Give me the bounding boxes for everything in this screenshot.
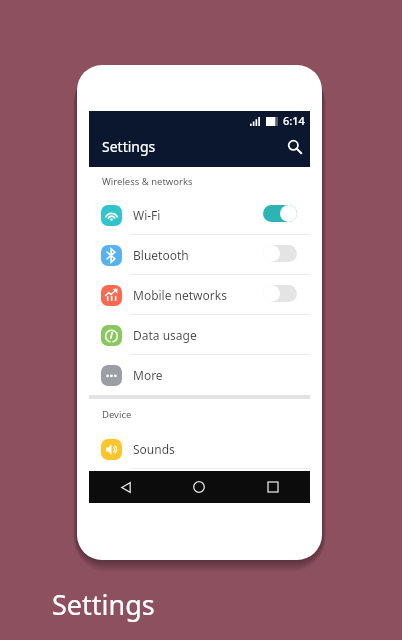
staticText: Device — [102, 408, 132, 421]
button[interactable]: Data usage — [89, 315, 310, 355]
staticText: Wi-Fi — [133, 207, 161, 223]
button[interactable]: Turn on — [263, 245, 297, 262]
button[interactable]: Recents — [236, 471, 310, 503]
button[interactable]: Mobile networks — [89, 275, 310, 315]
button[interactable]: Back — [89, 471, 162, 503]
staticText: Settings — [52, 586, 155, 623]
button[interactable]: Wi-Fi — [89, 195, 310, 235]
button[interactable]: Search — [284, 136, 306, 158]
staticText: Mobile networks — [133, 287, 227, 303]
staticText: Sounds — [133, 441, 175, 457]
button[interactable]: Turn off — [263, 205, 297, 222]
staticText: Bluetooth — [133, 247, 189, 263]
button[interactable]: More — [89, 355, 310, 395]
staticText: 6:14 — [283, 113, 305, 128]
button[interactable]: Bluetooth — [89, 235, 310, 275]
staticText: Data usage — [133, 327, 197, 343]
button[interactable]: Home — [162, 471, 236, 503]
staticText: Wireless & networks — [102, 175, 193, 188]
staticText: Settings — [102, 137, 156, 156]
staticText: More — [133, 367, 163, 383]
button[interactable]: Turn on — [263, 285, 297, 302]
button[interactable]: Sounds — [89, 429, 310, 469]
